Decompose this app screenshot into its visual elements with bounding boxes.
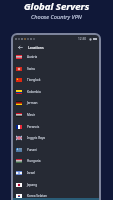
staticText: Global Servers [24,0,90,13]
button[interactable]: Jepang [13,179,99,191]
button[interactable]: Swiss [13,63,99,75]
staticText: Hungaria [27,159,41,163]
staticText: Korea Selatan [27,194,48,198]
staticText: 12:30 [78,37,87,41]
staticText: Tiongkok [27,78,41,82]
staticText: Mesir [27,113,36,117]
staticText: Locations [28,45,44,50]
button[interactable]: Jerman [13,97,99,109]
button[interactable]: Tiongkok [13,74,99,86]
staticText: Jerman [27,101,38,105]
button[interactable]: Hungaria [13,155,99,167]
button[interactable]: Mesir [13,109,99,121]
staticText: Austria [27,55,38,59]
staticText: Jepang [27,183,38,187]
staticText: Choose Country VPN [31,13,82,21]
button[interactable]: Back [16,43,24,51]
button[interactable]: Kolombia [13,86,99,98]
button[interactable]: Perancis [13,121,99,133]
staticText: Kolombia [27,90,41,94]
button[interactable]: Korea Selatan [13,190,99,200]
staticText: Yunani [27,148,37,152]
button[interactable]: Yunani [13,144,99,156]
staticText: Perancis [27,125,40,129]
button[interactable]: Austria [13,51,99,63]
button[interactable]: Inggris Raya [13,132,99,144]
staticText: Inggris Raya [27,136,46,140]
staticText: Israel [27,171,36,175]
staticText: Swiss [27,67,35,71]
button[interactable]: Israel [13,167,99,179]
